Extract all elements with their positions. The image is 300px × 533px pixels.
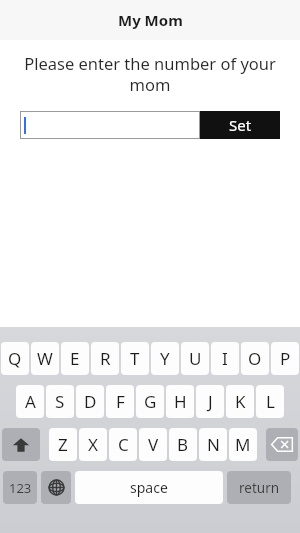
staticText: P bbox=[280, 347, 291, 370]
staticText: G bbox=[144, 390, 157, 413]
button[interactable]: Backspace bbox=[266, 428, 298, 461]
button[interactable]: W bbox=[31, 342, 59, 375]
staticText: return bbox=[239, 479, 280, 497]
staticText: W bbox=[37, 347, 53, 370]
button[interactable]: return bbox=[227, 471, 291, 504]
staticText: C bbox=[118, 433, 129, 456]
button[interactable]: I bbox=[211, 342, 239, 375]
button[interactable]: Switch keyboard bbox=[41, 471, 71, 504]
button[interactable]: C bbox=[109, 428, 137, 461]
staticText: J bbox=[208, 390, 213, 413]
staticText: E bbox=[70, 347, 80, 370]
button[interactable]: Set bbox=[200, 111, 280, 139]
staticText: L bbox=[266, 390, 275, 413]
button[interactable]: A bbox=[16, 385, 44, 418]
button[interactable]: T bbox=[121, 342, 149, 375]
button[interactable]: 123 bbox=[3, 471, 37, 504]
button[interactable]: S bbox=[46, 385, 74, 418]
staticText: K bbox=[235, 390, 246, 413]
button[interactable]: J bbox=[196, 385, 224, 418]
button[interactable]: Y bbox=[151, 342, 179, 375]
staticText: D bbox=[84, 390, 97, 413]
staticText: X bbox=[88, 433, 98, 456]
button[interactable]: X bbox=[79, 428, 107, 461]
staticText: Z bbox=[58, 433, 68, 456]
staticText: 123 bbox=[9, 479, 32, 497]
staticText: O bbox=[248, 347, 262, 370]
staticText: F bbox=[116, 390, 125, 413]
staticText: R bbox=[100, 347, 111, 370]
staticText: H bbox=[174, 390, 187, 413]
button[interactable]: O bbox=[241, 342, 269, 375]
button[interactable]: Q bbox=[1, 342, 29, 375]
staticText: B bbox=[177, 433, 189, 456]
button[interactable]: L bbox=[256, 385, 284, 418]
button[interactable]: G bbox=[136, 385, 164, 418]
button[interactable]: E bbox=[61, 342, 89, 375]
staticText: V bbox=[148, 433, 159, 456]
button[interactable]: Z bbox=[49, 428, 77, 461]
button[interactable]: Shift bbox=[2, 428, 40, 461]
button[interactable]: N bbox=[199, 428, 227, 461]
button[interactable]: V bbox=[139, 428, 167, 461]
staticText: M bbox=[235, 433, 251, 456]
button[interactable]: M bbox=[229, 428, 257, 461]
button[interactable]: F bbox=[106, 385, 134, 418]
button[interactable]: R bbox=[91, 342, 119, 375]
staticText: My Mom bbox=[118, 10, 183, 30]
button[interactable] bbox=[20, 111, 200, 139]
staticText: space bbox=[130, 478, 168, 497]
staticText: I bbox=[222, 347, 228, 370]
button[interactable]: K bbox=[226, 385, 254, 418]
staticText: A bbox=[25, 390, 36, 413]
staticText: N bbox=[207, 433, 220, 456]
staticText: Y bbox=[160, 347, 170, 370]
button[interactable]: D bbox=[76, 385, 104, 418]
button[interactable]: U bbox=[181, 342, 209, 375]
staticText: Set bbox=[229, 115, 252, 135]
staticText: Please enter the number of your mom bbox=[18, 52, 282, 96]
staticText: S bbox=[55, 390, 65, 413]
staticText: T bbox=[130, 347, 140, 370]
button[interactable]: H bbox=[166, 385, 194, 418]
button[interactable]: B bbox=[169, 428, 197, 461]
button[interactable]: P bbox=[271, 342, 299, 375]
staticText: U bbox=[189, 347, 202, 370]
staticText: Q bbox=[8, 347, 22, 370]
button[interactable]: space bbox=[75, 471, 223, 504]
